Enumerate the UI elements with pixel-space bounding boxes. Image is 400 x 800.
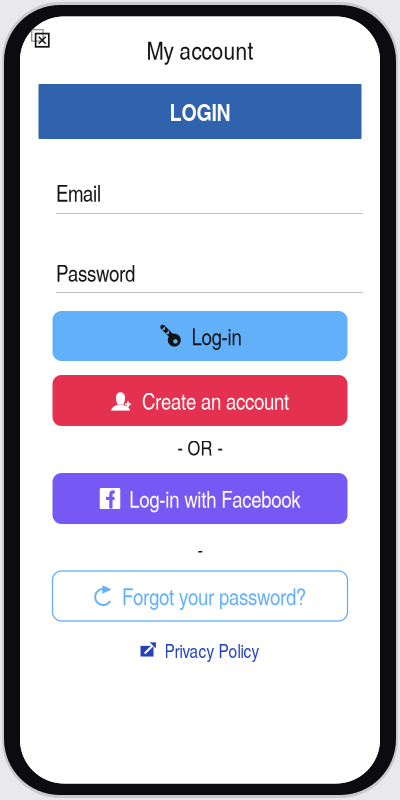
staticText: - OR - (177, 434, 222, 461)
staticText: Password (56, 257, 135, 288)
button[interactable]: Create an account (52, 375, 347, 426)
button[interactable]: Log-in (52, 311, 347, 361)
button[interactable]: Log-in with Facebook (52, 473, 347, 524)
staticText: My account (146, 32, 253, 67)
button[interactable]: Forgot your password? (52, 571, 347, 621)
staticText: Log-in with Facebook (129, 483, 300, 514)
staticText: Email (56, 177, 101, 208)
button[interactable]: Privacy Policy (20, 640, 380, 660)
staticText: Privacy Policy (164, 638, 259, 663)
staticText: Log-in (191, 320, 241, 352)
button[interactable]: LOGIN (38, 84, 361, 139)
staticText: LOGIN (169, 95, 230, 128)
button[interactable]: Close (25, 23, 56, 54)
staticText: - (197, 536, 202, 563)
staticText: Create an account (142, 385, 289, 416)
staticText: Forgot your password? (122, 580, 306, 612)
